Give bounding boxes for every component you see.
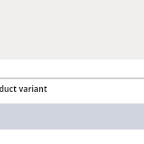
button[interactable]: duct variant: [0, 79, 144, 101]
staticText: duct variant: [0, 84, 48, 95]
button[interactable]: Selected product variant: [0, 103, 144, 129]
